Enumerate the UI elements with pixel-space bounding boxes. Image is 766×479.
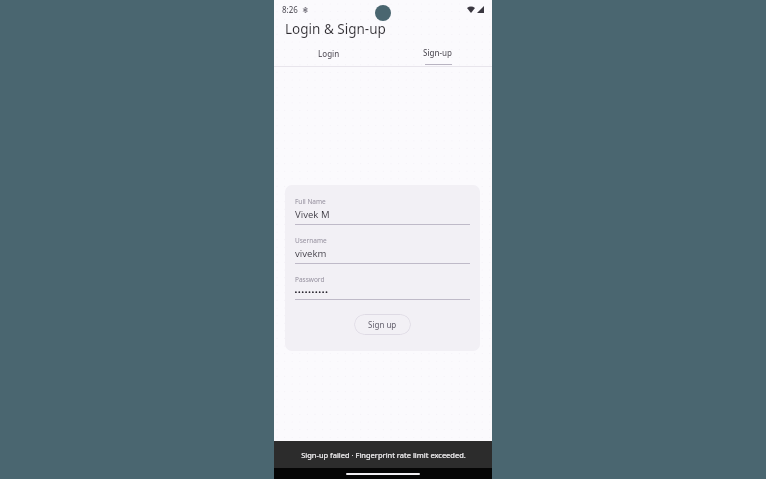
button[interactable]: Username: [295, 236, 470, 264]
button[interactable]: Sign-up: [383, 40, 492, 66]
staticText: vivekm: [295, 247, 327, 260]
staticText: Login: [318, 48, 340, 59]
button[interactable]: Full Name: [295, 197, 470, 225]
button[interactable]: Sign up: [354, 314, 411, 335]
staticText: Password: [295, 275, 325, 284]
button[interactable]: Password: [295, 275, 470, 300]
staticText: Username: [295, 236, 327, 245]
staticText: Full Name: [295, 197, 326, 206]
staticText: Sign-up failed · Fingerprint rate limit …: [301, 450, 466, 460]
staticText: 8:26: [282, 4, 298, 15]
button[interactable]: Login: [274, 40, 383, 66]
staticText: Sign-up: [423, 47, 453, 58]
staticText: Login & Sign-up: [285, 20, 386, 38]
staticText: Sign up: [368, 319, 397, 330]
staticText: Vivek M: [295, 208, 330, 221]
